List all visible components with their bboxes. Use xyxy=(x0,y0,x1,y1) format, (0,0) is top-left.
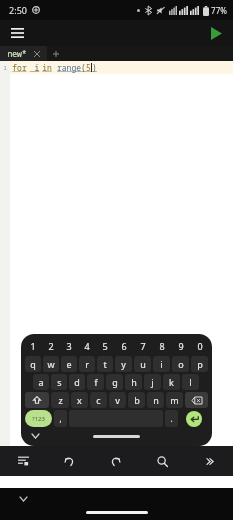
button[interactable]: g xyxy=(106,374,123,390)
staticText: for xyxy=(12,62,27,73)
button[interactable]: e xyxy=(61,356,77,372)
button[interactable]: n xyxy=(147,392,164,408)
staticText: b xyxy=(134,394,140,406)
button[interactable]: New tab xyxy=(47,46,65,61)
staticText: p xyxy=(197,358,203,370)
button[interactable]: k xyxy=(163,374,180,390)
button[interactable]: v xyxy=(109,392,126,408)
staticText: 2:50 xyxy=(9,4,27,16)
button[interactable]: 7 xyxy=(133,338,152,354)
staticText: v xyxy=(115,394,120,406)
button[interactable]: r xyxy=(79,356,95,372)
button[interactable]: x xyxy=(71,392,88,408)
button[interactable]: Format xyxy=(0,446,46,476)
button[interactable]: y xyxy=(115,356,132,372)
staticText: 5 xyxy=(102,340,108,352)
staticText: s xyxy=(57,376,62,388)
button[interactable]: Redo xyxy=(92,446,139,476)
button[interactable]: b xyxy=(128,392,145,408)
staticText: 1 xyxy=(30,340,36,352)
button[interactable]: w xyxy=(43,356,59,372)
staticText: new* xyxy=(7,48,27,59)
button[interactable]: o xyxy=(172,356,189,372)
button[interactable]: new* xyxy=(0,46,47,61)
button[interactable]: s xyxy=(51,374,67,390)
button[interactable]: u xyxy=(134,356,151,372)
button[interactable]: t xyxy=(97,356,113,372)
button[interactable]: . xyxy=(165,410,178,427)
button[interactable]: Undo xyxy=(46,446,92,476)
staticText: o xyxy=(178,358,184,370)
staticText: c xyxy=(96,394,101,406)
staticText: m xyxy=(170,394,179,406)
staticText: 2 xyxy=(48,340,54,352)
staticText: . xyxy=(170,413,173,424)
staticText: 3 xyxy=(66,340,72,352)
button[interactable]: Hide keyboard xyxy=(29,430,41,442)
button[interactable]: Collapse xyxy=(18,494,28,504)
button[interactable]: Backspace xyxy=(185,392,208,408)
staticText: h xyxy=(131,376,137,388)
button[interactable]: 6 xyxy=(114,338,133,354)
button[interactable]: Run xyxy=(205,22,227,44)
button[interactable]: 1 xyxy=(24,338,42,354)
staticText: e xyxy=(66,358,72,370)
button[interactable]: 9 xyxy=(171,338,190,354)
button[interactable]: , xyxy=(54,410,67,427)
staticText: in xyxy=(42,62,52,73)
staticText: g xyxy=(112,376,118,388)
staticText: d xyxy=(74,376,80,388)
button[interactable]: d xyxy=(69,374,85,390)
staticText: w xyxy=(47,358,55,370)
button[interactable]: 2 xyxy=(42,338,60,354)
staticText: 77% xyxy=(211,5,227,16)
staticText: 1 xyxy=(3,64,7,72)
staticText: j xyxy=(151,376,154,388)
button[interactable]: a xyxy=(33,374,49,390)
staticText: 7 xyxy=(140,340,146,352)
button[interactable]: m xyxy=(166,392,183,408)
staticText: f xyxy=(94,376,98,388)
staticText: x xyxy=(77,394,82,406)
button[interactable]: Search xyxy=(139,446,186,476)
staticText: 5 xyxy=(86,62,91,73)
button[interactable]: Close tab xyxy=(34,51,40,57)
button[interactable]: i xyxy=(153,356,170,372)
button[interactable]: c xyxy=(90,392,107,408)
button[interactable]: Shift xyxy=(25,392,49,408)
staticText: l xyxy=(189,376,192,388)
staticText: i xyxy=(27,62,42,73)
staticText: ?123 xyxy=(32,415,45,423)
button[interactable]: h xyxy=(125,374,142,390)
button[interactable]: j xyxy=(144,374,161,390)
staticText: y xyxy=(121,358,126,370)
staticText: 6 xyxy=(121,340,127,352)
staticText: n xyxy=(153,394,159,406)
staticText: 4 xyxy=(84,340,90,352)
button[interactable]: 3 xyxy=(60,338,78,354)
staticText: ) xyxy=(92,62,97,73)
staticText: t xyxy=(103,358,107,370)
staticText: z xyxy=(58,394,63,406)
staticText: u xyxy=(140,358,146,370)
button[interactable]: Menu xyxy=(6,22,28,44)
button[interactable]: p xyxy=(191,356,208,372)
button[interactable]: ?123 xyxy=(25,410,52,427)
button[interactable]: 8 xyxy=(152,338,171,354)
button[interactable]: More xyxy=(186,446,233,476)
button[interactable]: 0 xyxy=(190,338,209,354)
staticText: ( xyxy=(81,62,86,73)
button[interactable]: Enter xyxy=(186,411,202,427)
button[interactable]: 4 xyxy=(78,338,96,354)
button[interactable]: q xyxy=(25,356,41,372)
button[interactable]: l xyxy=(182,374,199,390)
button[interactable]: f xyxy=(87,374,104,390)
button[interactable]: z xyxy=(51,392,69,408)
staticText: 9 xyxy=(178,340,184,352)
staticText: q xyxy=(30,358,36,370)
staticText: range xyxy=(57,62,81,73)
staticText: r xyxy=(85,358,89,370)
button[interactable]: 5 xyxy=(96,338,114,354)
